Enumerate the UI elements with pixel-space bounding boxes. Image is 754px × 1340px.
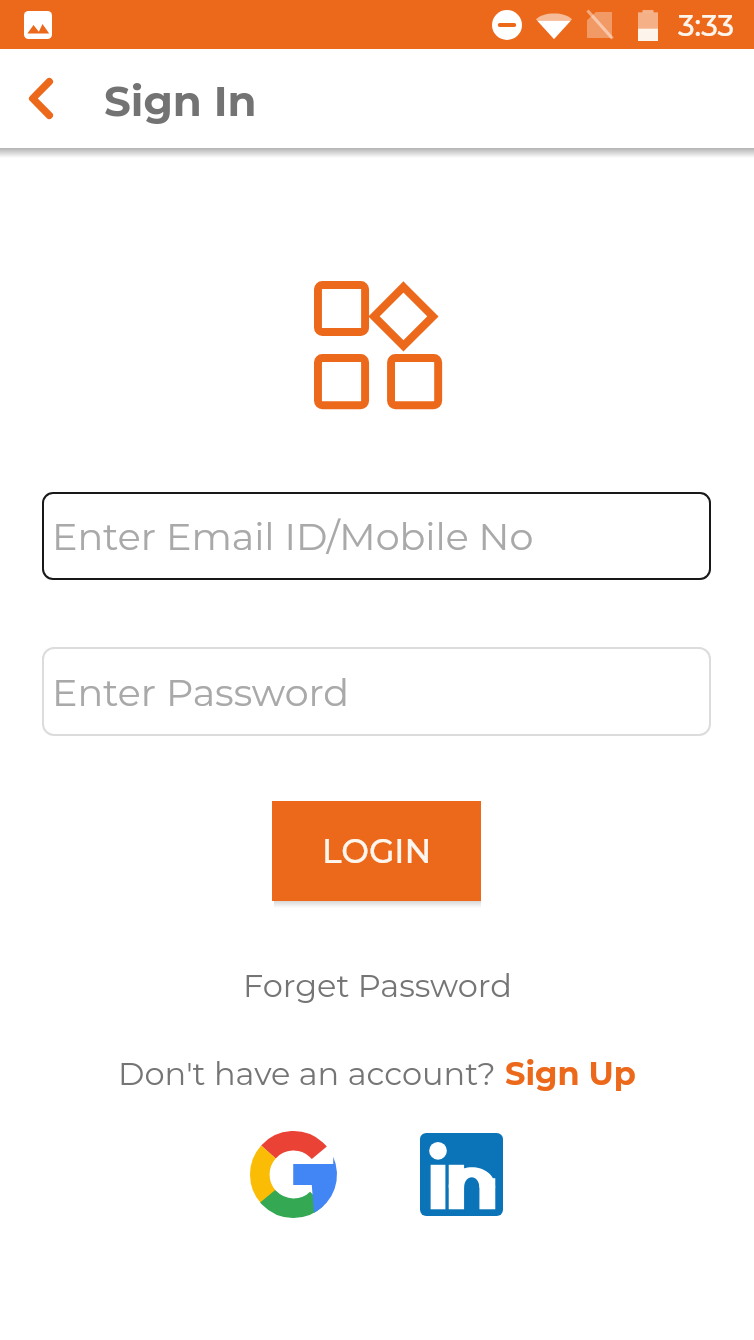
button[interactable]: Enter Password	[42, 647, 711, 736]
button[interactable]: Enter Email ID/Mobile No	[42, 492, 711, 580]
button[interactable]: Sign in with Google	[250, 1131, 337, 1218]
staticText: Enter Password	[52, 669, 349, 715]
button[interactable]: Forget Password	[233, 960, 522, 1011]
button[interactable]: Sign in with LinkedIn	[420, 1133, 503, 1216]
staticText: LOGIN	[322, 831, 432, 871]
staticText: Don't have an account?	[118, 1054, 505, 1093]
staticText: 3:33	[678, 8, 735, 43]
button[interactable]: LOGIN	[272, 801, 481, 901]
staticText: Enter Email ID/Mobile No	[52, 513, 534, 559]
button[interactable]: Sign Up	[505, 1054, 636, 1093]
button[interactable]: Back	[5, 54, 77, 143]
staticText: Sign In	[104, 75, 257, 126]
